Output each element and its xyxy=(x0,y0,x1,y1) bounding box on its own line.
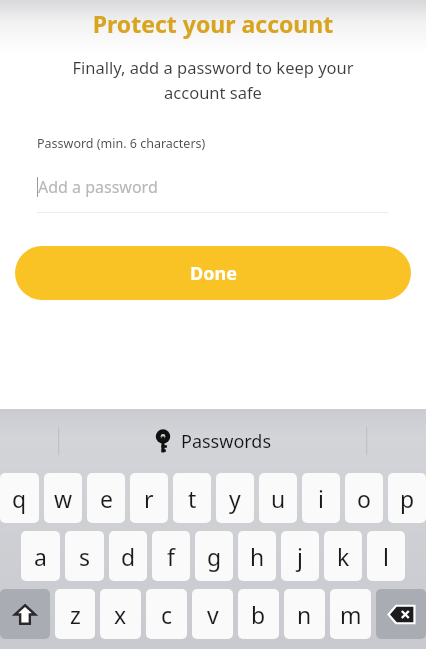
staticText: d xyxy=(121,541,136,572)
staticText: i xyxy=(318,483,324,514)
staticText: e xyxy=(100,483,113,514)
staticText: Protect your account xyxy=(0,8,426,39)
button[interactable]: u xyxy=(259,473,297,523)
staticText: Password (min. 6 characters) xyxy=(37,135,206,152)
button[interactable]: g xyxy=(195,531,233,581)
staticText: r xyxy=(144,483,154,514)
button[interactable]: p xyxy=(388,473,426,523)
staticText: h xyxy=(250,541,265,572)
button[interactable]: Passwords xyxy=(0,409,426,473)
button[interactable]: r xyxy=(130,473,168,523)
staticText: c xyxy=(161,599,173,630)
button[interactable]: e xyxy=(87,473,125,523)
button[interactable]: a xyxy=(21,531,60,581)
staticText: j xyxy=(297,541,303,572)
button[interactable]: Done xyxy=(15,246,411,300)
button[interactable]: m xyxy=(330,589,371,639)
other: Passwords xyxy=(154,428,172,454)
staticText: Add a password xyxy=(38,176,158,198)
staticText: o xyxy=(357,483,371,514)
button[interactable]: Protect your account xyxy=(0,8,426,39)
staticText: b xyxy=(251,599,266,630)
staticText: s xyxy=(79,541,91,572)
button[interactable]: s xyxy=(65,531,104,581)
staticText: t xyxy=(188,483,197,514)
button[interactable]: f xyxy=(152,531,190,581)
button[interactable]: x xyxy=(100,589,141,639)
staticText: m xyxy=(340,599,362,630)
button[interactable]: n xyxy=(284,589,325,639)
staticText: x xyxy=(114,599,127,630)
staticText: p xyxy=(400,483,415,514)
staticText: y xyxy=(229,483,241,514)
button[interactable]: y xyxy=(216,473,254,523)
staticText: z xyxy=(70,599,81,630)
staticText: a xyxy=(34,541,47,572)
button[interactable]: b xyxy=(238,589,279,639)
staticText: g xyxy=(207,541,222,572)
staticText: w xyxy=(54,483,73,514)
staticText: k xyxy=(337,541,350,572)
staticText: u xyxy=(271,483,286,514)
button[interactable]: v xyxy=(192,589,233,639)
button[interactable]: z xyxy=(55,589,95,639)
button[interactable]: d xyxy=(109,531,147,581)
button[interactable]: t xyxy=(173,473,211,523)
button[interactable]: q xyxy=(0,473,39,523)
button[interactable]: Shift xyxy=(0,589,50,639)
button[interactable]: j xyxy=(281,531,319,581)
button[interactable]: Password (min. 6 characters) xyxy=(37,135,389,213)
button[interactable]: i xyxy=(302,473,340,523)
button[interactable]: l xyxy=(367,531,405,581)
staticText: q xyxy=(12,483,27,514)
staticText: Passwords xyxy=(181,429,272,454)
staticText: v xyxy=(207,599,219,630)
button[interactable]: w xyxy=(44,473,82,523)
button[interactable]: Backspace xyxy=(376,589,426,639)
staticText: Done xyxy=(190,261,237,286)
staticText: Finally, add a password to keep your acc… xyxy=(28,56,398,103)
button[interactable]: h xyxy=(238,531,276,581)
button[interactable]: c xyxy=(146,589,187,639)
staticText: f xyxy=(167,541,175,572)
button[interactable]: k xyxy=(324,531,362,581)
staticText: n xyxy=(297,599,312,630)
staticText: l xyxy=(383,541,389,572)
button[interactable]: o xyxy=(345,473,383,523)
